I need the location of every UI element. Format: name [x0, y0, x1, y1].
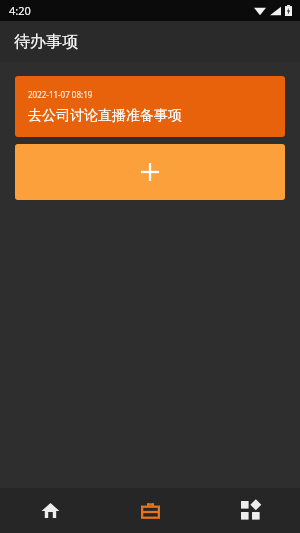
button[interactable]: Add new task — [15, 144, 285, 200]
button[interactable]: Apps — [200, 488, 300, 533]
button[interactable]: 2022-11-07 08:19 — [15, 76, 285, 137]
button[interactable]: Tasks — [100, 488, 200, 533]
staticText: 去公司讨论直播准备事项 — [28, 107, 182, 125]
staticText: 待办事项 — [14, 32, 78, 52]
staticText: 4:20 — [9, 3, 31, 18]
staticText: 2022-11-07 08:19 — [28, 89, 93, 100]
button[interactable]: Home — [0, 488, 100, 533]
